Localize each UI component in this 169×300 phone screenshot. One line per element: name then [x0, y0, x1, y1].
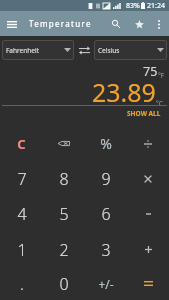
staticText: +/-: [98, 276, 114, 292]
button[interactable]: Celsius: [94, 40, 167, 60]
button[interactable]: .: [0, 267, 43, 300]
staticText: 75: [143, 63, 158, 80]
button[interactable]: Equals: [127, 267, 169, 300]
staticText: 6: [101, 203, 111, 225]
button[interactable]: 3: [85, 232, 127, 267]
staticText: SHOW ALL: [127, 109, 161, 118]
button[interactable]: Swap units: [74, 40, 94, 60]
staticText: 8: [59, 168, 69, 190]
button[interactable]: 9: [85, 161, 127, 196]
staticText: 21:24: [147, 1, 165, 11]
button[interactable]: Divide: [127, 126, 169, 161]
staticText: C: [17, 135, 26, 153]
button[interactable]: 1: [0, 232, 43, 267]
button[interactable]: C: [0, 126, 43, 161]
staticText: °F: [158, 71, 165, 80]
button[interactable]: Backspace: [43, 126, 85, 161]
button[interactable]: 7: [0, 161, 43, 196]
button[interactable]: Multiply: [127, 161, 169, 196]
button[interactable]: 2: [43, 232, 85, 267]
button[interactable]: Navigation menu: [1, 13, 23, 35]
staticText: 2: [59, 239, 69, 261]
button[interactable]: 8: [43, 161, 85, 196]
staticText: %: [100, 134, 112, 153]
staticText: 3: [101, 239, 111, 261]
staticText: 0: [59, 273, 69, 295]
staticText: °C: [156, 99, 163, 108]
staticText: 4: [17, 203, 27, 225]
staticText: Temperature: [29, 18, 92, 29]
button[interactable]: Plus: [127, 232, 169, 267]
button[interactable]: 4: [0, 196, 43, 232]
button[interactable]: SHOW ALL: [126, 108, 162, 119]
button[interactable]: Favorite: [128, 13, 150, 35]
button[interactable]: 0: [43, 267, 85, 300]
staticText: 5: [59, 203, 69, 225]
staticText: .: [20, 273, 24, 295]
staticText: Celsius: [98, 46, 120, 55]
button[interactable]: 6: [85, 196, 127, 232]
staticText: Fahrenheit: [6, 46, 39, 55]
staticText: 1: [17, 239, 27, 261]
button[interactable]: +/-: [85, 267, 127, 300]
button[interactable]: Fahrenheit: [2, 40, 74, 60]
staticText: 83%: [126, 1, 140, 11]
button[interactable]: More options: [149, 14, 169, 34]
staticText: 7: [17, 168, 27, 190]
button[interactable]: 5: [43, 196, 85, 232]
button[interactable]: Search: [105, 13, 127, 35]
button[interactable]: Minus: [127, 196, 169, 232]
staticText: 9: [101, 168, 111, 190]
button[interactable]: %: [85, 126, 127, 161]
staticText: 23.89: [92, 75, 156, 109]
